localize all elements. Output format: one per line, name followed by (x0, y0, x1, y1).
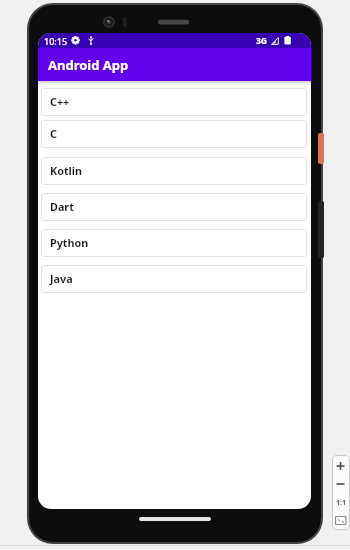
staticText: C++ (50, 94, 70, 109)
button[interactable] (332, 475, 350, 493)
staticText: 3G (256, 35, 268, 47)
staticText: Dart (50, 199, 74, 214)
button[interactable]: Java (41, 265, 307, 293)
staticText: C (50, 126, 57, 141)
button[interactable]: Dart (41, 193, 307, 221)
button[interactable]: Python (41, 229, 307, 257)
staticText: Kotlin (50, 163, 83, 178)
button[interactable]: C (41, 120, 307, 148)
button[interactable] (332, 511, 350, 529)
button[interactable] (332, 493, 350, 511)
button[interactable]: Kotlin (41, 157, 307, 185)
staticText: Android App (48, 56, 129, 74)
staticText: Java (50, 271, 73, 286)
button[interactable]: C++ (41, 88, 307, 116)
staticText: 10:15 (44, 35, 68, 47)
button[interactable] (332, 455, 350, 475)
staticText: Python (50, 235, 89, 250)
staticText: 1:1 (336, 498, 346, 508)
